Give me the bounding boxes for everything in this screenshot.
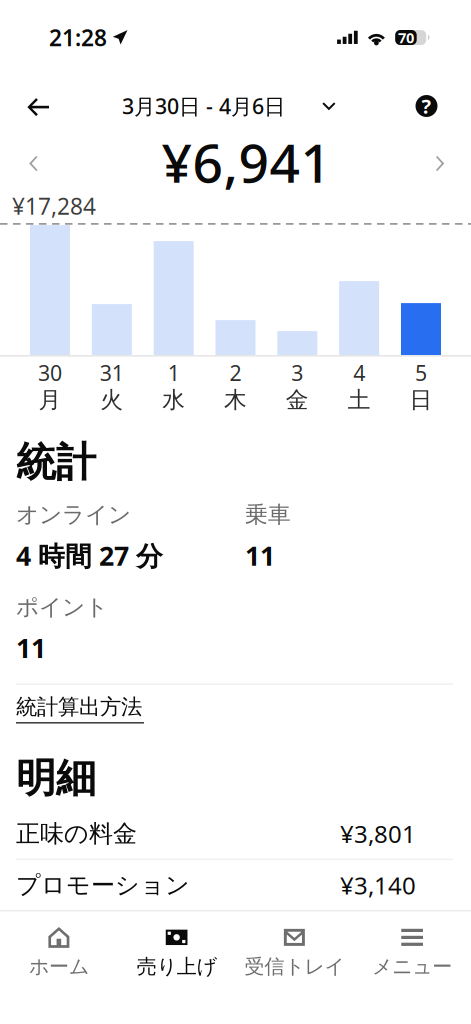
- staticText: 統計算出方法: [16, 694, 142, 720]
- staticText: メニュー: [372, 954, 452, 979]
- staticText: ?: [421, 93, 431, 119]
- staticText: 統計: [16, 438, 96, 487]
- staticText: 正味の料金: [16, 819, 137, 848]
- staticText: 3: [291, 359, 303, 387]
- staticText: 4 時間 27 分: [16, 538, 163, 573]
- staticText: 2: [229, 359, 241, 387]
- button[interactable]: Next week: [408, 137, 471, 187]
- staticText: 30: [38, 359, 62, 387]
- staticText: ホーム: [29, 954, 89, 979]
- button[interactable]: ホーム: [0, 911, 118, 1024]
- staticText: 売り上げ: [137, 954, 217, 979]
- button[interactable]: メニュー: [353, 911, 471, 1024]
- button[interactable]: プロモーション: [0, 860, 471, 910]
- staticText: ¥17,284: [12, 191, 96, 221]
- button[interactable]: 3月30日 - 4月6日: [122, 78, 340, 134]
- staticText: 金: [286, 386, 309, 414]
- staticText: 21:28: [49, 22, 107, 52]
- button[interactable]: 受信トレイ: [235, 911, 353, 1024]
- staticText: 木: [224, 386, 247, 414]
- staticText: 1: [168, 359, 180, 387]
- button[interactable]: Previous week: [0, 137, 65, 187]
- staticText: 3月30日 - 4月6日: [122, 92, 285, 120]
- staticText: 月: [38, 386, 61, 414]
- staticText: ポイント: [16, 593, 108, 621]
- staticText: 31: [100, 359, 124, 387]
- staticText: 乗車: [245, 501, 291, 529]
- button[interactable]: 統計算出方法: [0, 685, 144, 727]
- button[interactable]: Help: [382, 78, 471, 134]
- staticText: 70: [398, 28, 414, 47]
- staticText: 明細: [16, 753, 96, 803]
- staticText: 5: [415, 359, 427, 387]
- staticText: ¥3,801: [340, 818, 416, 850]
- staticText: 11: [245, 538, 275, 573]
- staticText: プロモーション: [16, 870, 190, 900]
- staticText: 4: [353, 359, 365, 387]
- button[interactable]: Back: [0, 78, 74, 134]
- staticText: 水: [162, 386, 185, 414]
- button[interactable]: 売り上げ: [118, 911, 236, 1024]
- staticText: 土: [348, 386, 371, 414]
- staticText: ¥6,941: [161, 127, 331, 197]
- staticText: 日: [409, 386, 432, 414]
- staticText: 火: [100, 386, 123, 414]
- staticText: 受信トレイ: [244, 954, 344, 979]
- staticText: 11: [16, 630, 46, 665]
- button[interactable]: 正味の料金: [0, 809, 471, 860]
- staticText: オンライン: [16, 501, 131, 529]
- staticText: ¥3,140: [340, 869, 416, 901]
